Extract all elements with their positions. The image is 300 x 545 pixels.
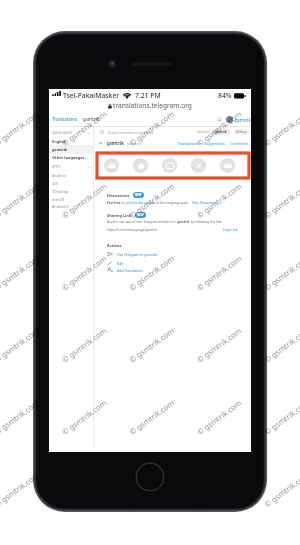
staticText: 84% — [218, 91, 232, 100]
staticText: Anyone can switch their Telegram interfa… — [107, 220, 177, 224]
staticText: Translations — [52, 116, 78, 122]
button[interactable]: Suggestions — [204, 141, 225, 146]
staticText: of this language pack. — [156, 201, 189, 205]
staticText: gsmtrik — [107, 140, 124, 146]
staticText: Search in — [197, 130, 210, 134]
staticText: LANGUAGES — [52, 131, 73, 135]
button[interactable]: English — [52, 138, 91, 144]
button[interactable]: LANGUAGES — [52, 130, 91, 136]
staticText: Edit — [117, 261, 124, 266]
staticText: by following this link. — [190, 220, 223, 224]
button[interactable]: All Apps — [233, 129, 251, 135]
staticText: macOS — [52, 197, 65, 202]
staticText: Add Translators — [117, 268, 143, 273]
staticText: gsmtrik — [235, 117, 251, 123]
staticText: Sharing Link — [107, 213, 132, 218]
staticText: English — [52, 139, 66, 144]
staticText: APPS — [52, 165, 61, 169]
staticText: iOS — [52, 181, 58, 186]
button[interactable]: APPS — [52, 164, 91, 170]
button[interactable]: macOS — [191, 158, 206, 173]
button[interactable]: Android X — [220, 158, 235, 173]
button[interactable]: gsmtrik — [212, 129, 230, 135]
button[interactable]: Android — [52, 172, 91, 178]
staticText: NEW — [137, 213, 144, 217]
staticText: Discussions — [107, 193, 130, 198]
button[interactable]: Translations — [52, 116, 100, 122]
button[interactable]: Comments — [230, 141, 249, 146]
button[interactable]: iOS — [52, 180, 91, 186]
staticText: Feel free — [107, 201, 122, 205]
button[interactable]: Use Telegram in gsmtrik — [107, 251, 157, 257]
staticText: to join the discussions — [122, 201, 156, 205]
button[interactable]: View Discussion › — [192, 201, 218, 205]
button[interactable]: Android — [104, 158, 119, 173]
staticText: Use Telegram in gsmtrik — [117, 252, 157, 257]
button[interactable]: TDesktop — [162, 158, 177, 173]
staticText: https://t.me/setlanguage/gsmtrik — [107, 228, 158, 232]
staticText: Other languages... — [52, 155, 88, 160]
button[interactable]: Other languages... — [52, 154, 91, 160]
staticText: Android X — [52, 204, 69, 209]
button[interactable]: Copy Link — [223, 228, 238, 232]
staticText: NEW — [135, 193, 142, 197]
staticText: Android — [52, 173, 66, 178]
staticText: gsmtrik — [52, 147, 68, 152]
staticText: All Apps — [236, 130, 248, 134]
staticText: gsmtrik — [177, 220, 190, 224]
button[interactable]: Android X — [52, 203, 91, 209]
button[interactable]: gsmtrik — [52, 146, 91, 152]
staticText: TDesktop — [52, 189, 69, 194]
staticText: gsmtrik — [83, 116, 100, 122]
button[interactable]: Translations — [178, 141, 199, 146]
staticText: Tsel-PakaiMasker — [63, 91, 120, 100]
staticText: Actions — [107, 243, 122, 248]
button[interactable]: TDesktop — [52, 188, 91, 194]
staticText: gsmtrik — [127, 141, 141, 146]
staticText: 7.21 PM — [135, 91, 161, 100]
button[interactable]: iOS — [133, 158, 148, 173]
staticText: Search translations and keys — [108, 130, 154, 135]
staticText: gsmtrik — [215, 130, 227, 134]
button[interactable]: macOS — [52, 196, 91, 202]
other: Back — [99, 141, 104, 146]
button[interactable]: Add Translators — [107, 267, 143, 273]
button[interactable]: Edit — [107, 260, 124, 266]
staticText: translations.telegram.org — [113, 101, 192, 110]
other: Notifications — [217, 117, 222, 122]
